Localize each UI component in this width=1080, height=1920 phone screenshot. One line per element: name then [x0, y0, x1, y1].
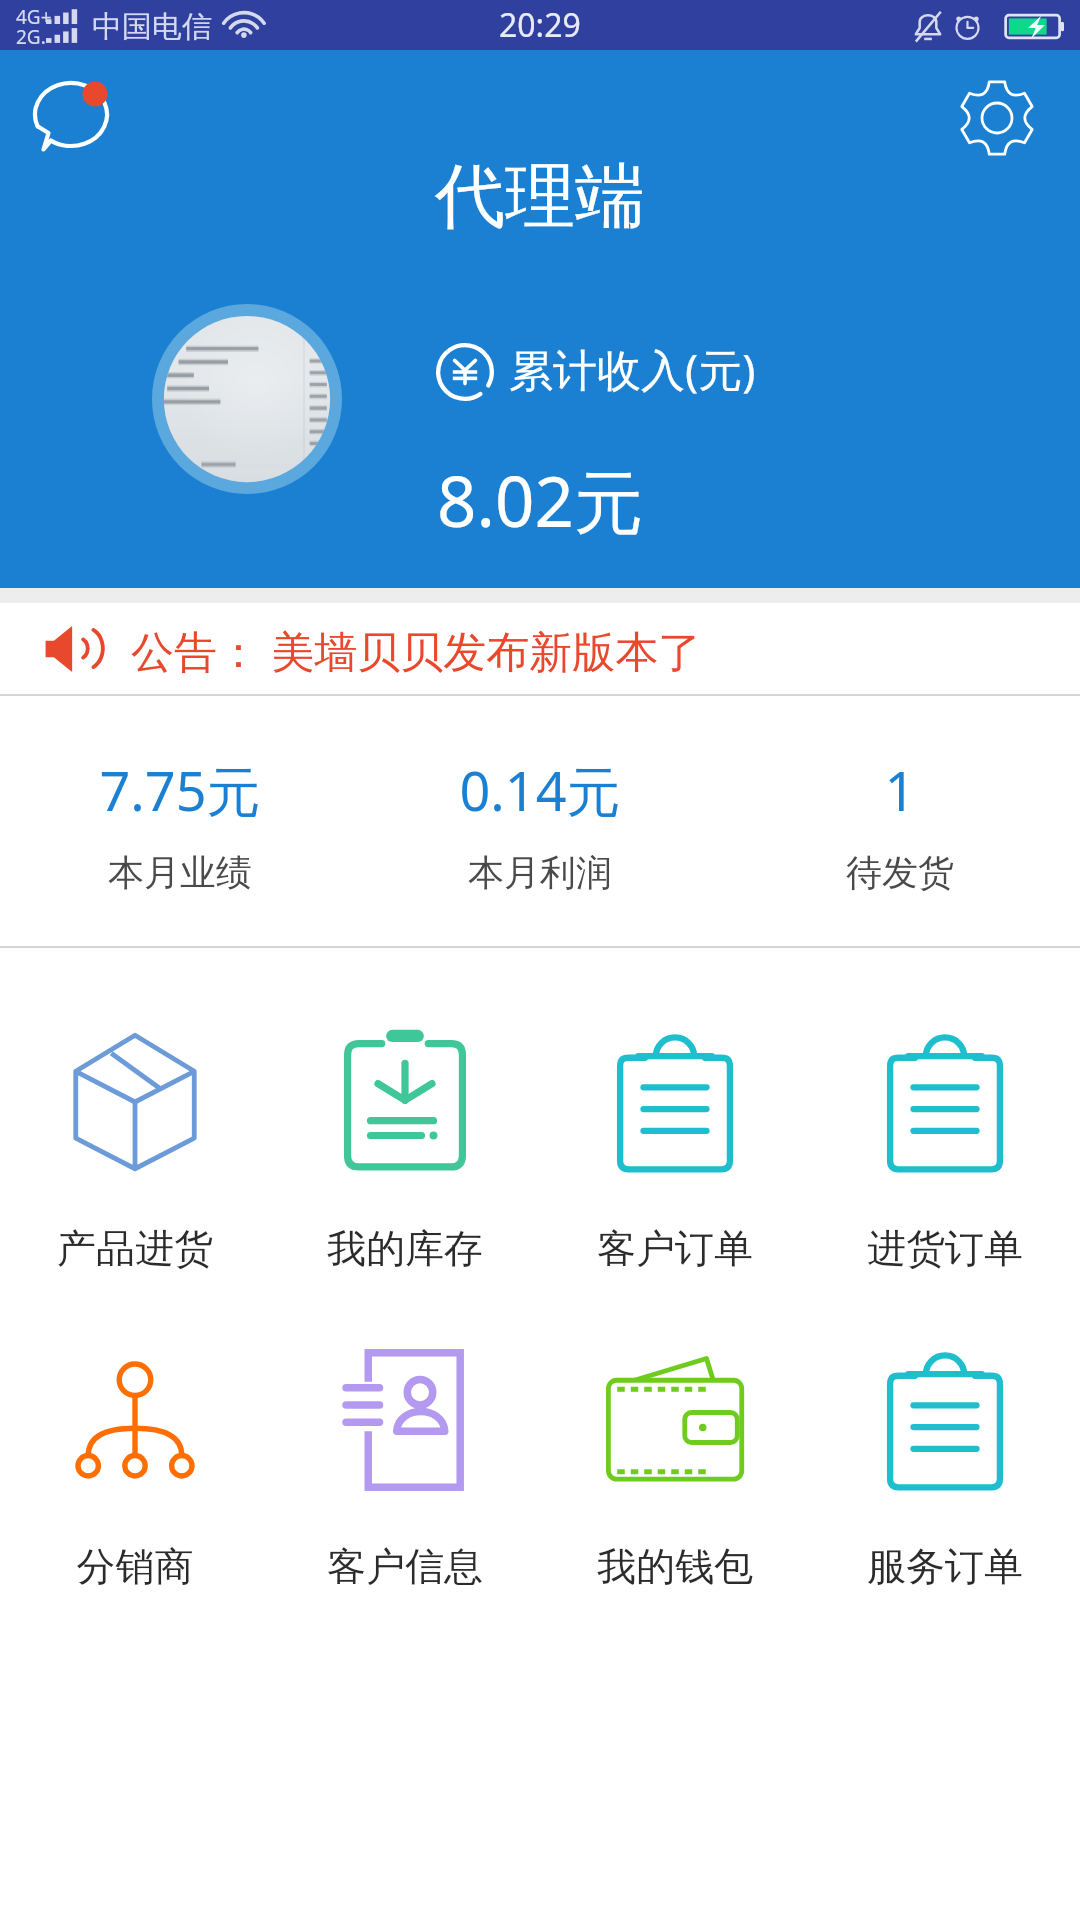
button[interactable]: Settings: [955, 78, 1039, 162]
button[interactable]: 服务订单: [810, 1266, 1080, 1584]
button[interactable]: 7.75元: [0, 696, 360, 946]
staticText: 我的钱包: [540, 1542, 810, 1591]
staticText: 代理端: [0, 153, 1080, 241]
staticText: 4G+: [16, 4, 52, 30]
staticText: 我的库存: [270, 1224, 540, 1273]
staticText: 7.75元: [0, 753, 360, 827]
staticText: 中国电信: [92, 8, 212, 46]
button[interactable]: 公告： 美墙贝贝发布新版本了: [0, 603, 1080, 694]
button[interactable]: Profile photo: [152, 304, 342, 494]
staticText: 20:29: [499, 3, 581, 47]
staticText: 分销商: [0, 1542, 270, 1591]
button[interactable]: 1: [720, 696, 1080, 946]
staticText: 进货订单: [810, 1224, 1080, 1273]
staticText: 1: [720, 753, 1080, 827]
button[interactable]: 分销商: [0, 1266, 270, 1584]
staticText: 客户订单: [540, 1224, 810, 1273]
button[interactable]: 客户订单: [540, 948, 810, 1266]
button[interactable]: 我的库存: [270, 948, 540, 1266]
staticText: 0.14元: [360, 753, 720, 827]
staticText: 客户信息: [270, 1542, 540, 1591]
staticText: 服务订单: [810, 1542, 1080, 1591]
staticText: 产品进货: [0, 1224, 270, 1273]
staticText: 公告： 美墙贝贝发布新版本了: [131, 621, 702, 680]
button[interactable]: 我的钱包: [540, 1266, 810, 1584]
button[interactable]: 客户信息: [270, 1266, 540, 1584]
staticText: 8.02元: [437, 453, 643, 547]
staticText: 累计收入(元): [509, 339, 756, 399]
button[interactable]: 产品进货: [0, 948, 270, 1266]
staticText: 待发货: [720, 850, 1080, 895]
staticText: 本月业绩: [0, 850, 360, 895]
button[interactable]: 0.14元: [360, 696, 720, 946]
staticText: 2G.: [16, 24, 46, 50]
staticText: 本月利润: [360, 850, 720, 895]
button[interactable]: 进货订单: [810, 948, 1080, 1266]
button[interactable]: Messages: [28, 72, 124, 168]
